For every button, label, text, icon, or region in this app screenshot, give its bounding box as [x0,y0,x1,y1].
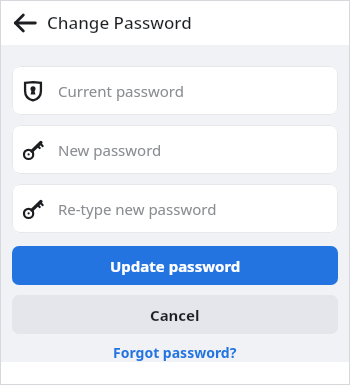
staticText: Cancel [150,305,200,325]
button[interactable]: Forgot password? [12,342,338,362]
staticText: Current password [58,81,184,101]
staticText: Forgot password? [113,343,237,362]
staticText: Re-type new password [58,199,217,219]
button[interactable]: Re-type new password [12,184,338,233]
staticText: Update password [110,256,241,276]
button[interactable]: Back [12,10,38,36]
button[interactable]: Update password [12,246,338,285]
staticText: Change Password [47,11,192,34]
button[interactable]: New password [12,125,338,174]
button[interactable]: Current password [12,66,338,115]
button[interactable]: Cancel [12,295,338,334]
staticText: New password [58,140,162,160]
